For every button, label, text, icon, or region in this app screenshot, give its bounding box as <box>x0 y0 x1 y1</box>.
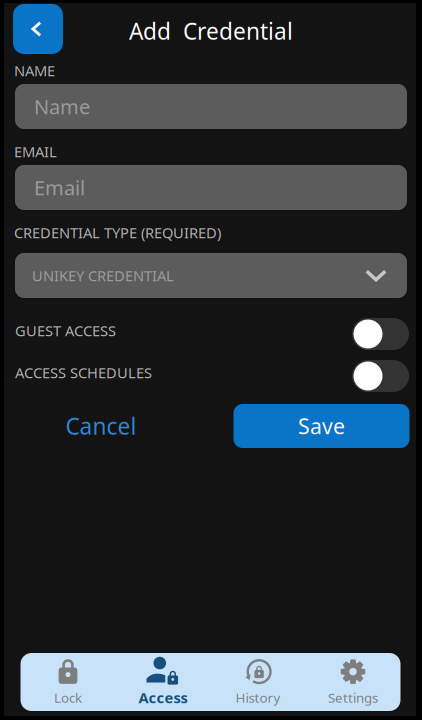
button[interactable]: History <box>210 653 305 711</box>
staticText: UNIKEY CREDENTIAL <box>32 266 174 285</box>
button[interactable]: Cancel <box>46 404 156 448</box>
staticText: GUEST ACCESS <box>15 321 116 340</box>
staticText: NAME <box>14 61 55 80</box>
button[interactable]: Settings <box>305 653 400 711</box>
button[interactable]: Lock <box>20 653 115 711</box>
staticText: Settings <box>328 689 378 706</box>
button[interactable]: ACCESS SCHEDULES <box>350 360 407 392</box>
button[interactable]: Save <box>233 404 409 448</box>
staticText: Lock <box>54 689 82 706</box>
staticText: Email <box>34 174 85 201</box>
staticText: CREDENTIAL TYPE (REQUIRED) <box>14 223 221 242</box>
staticText: ACCESS SCHEDULES <box>15 363 152 382</box>
staticText: Cancel <box>65 411 136 441</box>
button[interactable]: Back <box>13 4 63 54</box>
staticText: Access <box>138 688 187 707</box>
button[interactable]: UNIKEY CREDENTIAL <box>15 253 407 298</box>
button[interactable]: Access <box>115 653 210 711</box>
staticText: Add Credential <box>129 16 293 46</box>
staticText: Save <box>298 412 345 440</box>
staticText: History <box>235 689 280 706</box>
staticText: EMAIL <box>14 142 57 161</box>
button[interactable]: GUEST ACCESS <box>350 318 407 350</box>
staticText: Name <box>34 93 90 120</box>
